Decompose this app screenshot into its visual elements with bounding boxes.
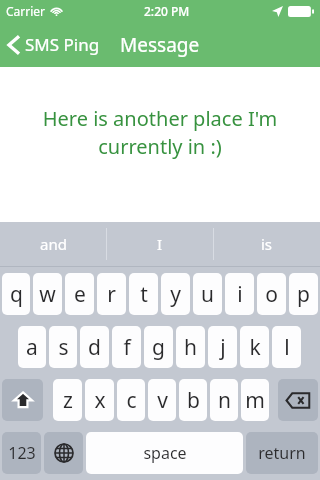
staticText: 2:20 PM (144, 3, 190, 19)
staticText: d (88, 333, 101, 362)
button[interactable]: 123 (2, 432, 41, 474)
button[interactable]: I (107, 222, 213, 266)
staticText: and (40, 234, 67, 254)
staticText: u (201, 280, 214, 309)
button[interactable]: Backspace (278, 379, 318, 421)
button[interactable]: p (289, 273, 318, 315)
staticText: i (237, 280, 243, 309)
staticText: Here is another place I'm currently in :… (20, 105, 300, 160)
staticText: z (63, 386, 73, 415)
button[interactable]: l (272, 326, 301, 368)
button[interactable]: y (161, 273, 190, 315)
button[interactable]: n (210, 379, 238, 421)
staticText: q (10, 280, 23, 309)
staticText: t (140, 280, 148, 309)
button[interactable]: u (193, 273, 222, 315)
staticText: v (157, 386, 168, 415)
button[interactable]: Change keyboard language (44, 432, 83, 474)
staticText: l (284, 333, 290, 362)
staticText: w (39, 280, 56, 309)
button[interactable]: v (148, 379, 176, 421)
button[interactable]: x (85, 379, 114, 421)
staticText: j (220, 333, 226, 362)
button[interactable]: m (241, 379, 269, 421)
staticText: n (218, 386, 231, 415)
button[interactable]: o (257, 273, 286, 315)
button[interactable]: a (18, 326, 46, 368)
button[interactable]: s (49, 326, 77, 368)
button[interactable]: Shift (2, 379, 43, 421)
button[interactable]: space (86, 432, 243, 474)
button[interactable]: and (0, 222, 106, 266)
button[interactable]: w (33, 273, 62, 315)
staticText: e (74, 280, 86, 309)
staticText: Carrier (6, 3, 46, 19)
button[interactable]: SMS Ping (8, 33, 100, 56)
staticText: r (107, 280, 116, 309)
staticText: m (245, 386, 265, 415)
button[interactable]: t (129, 273, 158, 315)
button[interactable]: j (208, 326, 237, 368)
staticText: h (184, 333, 197, 362)
staticText: b (187, 386, 200, 415)
staticText: 123 (8, 442, 36, 464)
staticText: a (26, 333, 38, 362)
staticText: g (152, 333, 165, 362)
button[interactable]: g (144, 326, 173, 368)
button[interactable]: z (53, 379, 82, 421)
staticText: s (58, 333, 69, 362)
staticText: x (94, 386, 106, 415)
button[interactable]: r (97, 273, 126, 315)
staticText: p (297, 280, 310, 309)
staticText: Message (120, 32, 200, 58)
button[interactable]: d (80, 326, 109, 368)
staticText: is (261, 234, 273, 254)
button[interactable]: is (214, 222, 320, 266)
button[interactable]: return (246, 432, 318, 474)
staticText: space (143, 442, 187, 464)
button[interactable]: b (179, 379, 207, 421)
staticText: f (123, 333, 131, 362)
staticText: SMS Ping (25, 33, 100, 56)
staticText: return (258, 442, 306, 464)
staticText: k (249, 333, 261, 362)
button[interactable]: e (65, 273, 94, 315)
staticText: c (126, 386, 137, 415)
button[interactable]: f (112, 326, 141, 368)
button[interactable]: q (2, 273, 30, 315)
staticText: y (170, 280, 181, 309)
staticText: o (265, 280, 278, 309)
button[interactable]: i (225, 273, 254, 315)
button[interactable]: h (176, 326, 205, 368)
button[interactable]: c (117, 379, 145, 421)
button[interactable]: k (240, 326, 269, 368)
staticText: I (157, 234, 163, 254)
